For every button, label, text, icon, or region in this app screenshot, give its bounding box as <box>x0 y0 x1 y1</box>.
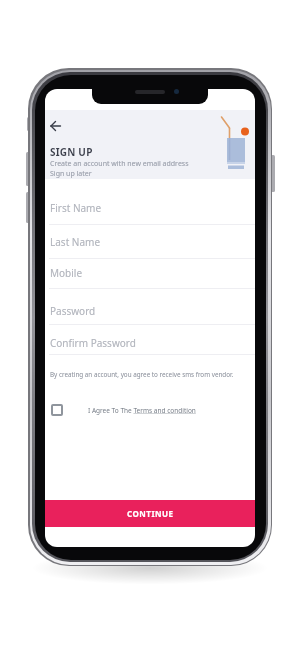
staticText: CONTINUE <box>127 508 174 519</box>
staticText: SIGN UP <box>50 145 93 159</box>
button[interactable]: CONTINUE <box>45 500 255 527</box>
button[interactable]: I Agree To The Terms and condition <box>88 406 196 415</box>
button[interactable] <box>48 118 64 134</box>
staticText: First Name <box>50 201 102 215</box>
button[interactable] <box>51 404 63 416</box>
staticText: Mobile <box>50 266 83 280</box>
staticText: Create an account with new email address <box>50 159 189 169</box>
button[interactable]: Sign up later <box>50 169 92 179</box>
staticText: By creating an account, you agree to rec… <box>50 370 234 379</box>
staticText: Confirm Password <box>50 336 136 350</box>
staticText: Last Name <box>50 235 101 249</box>
staticText: Password <box>50 304 96 318</box>
